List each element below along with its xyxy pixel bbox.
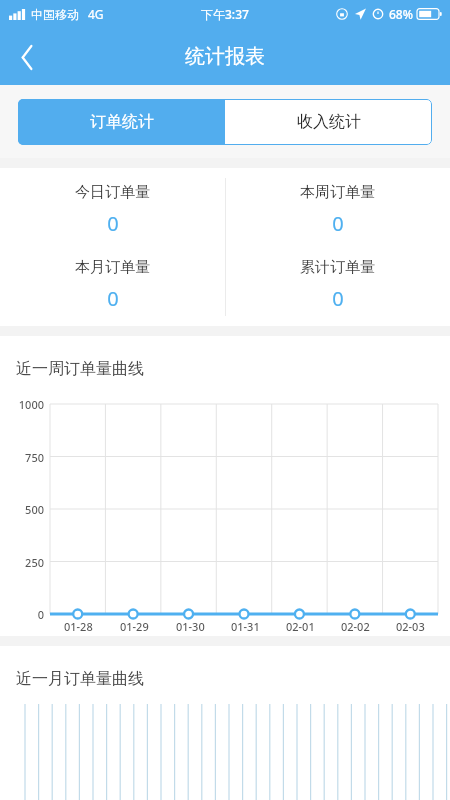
button[interactable]: 收入统计 [225, 99, 432, 145]
staticText: 02-02 [341, 619, 370, 634]
staticText: 今日订单量 [75, 183, 150, 202]
staticText: 统计报表 [185, 44, 265, 69]
staticText: 0 [107, 285, 119, 312]
button[interactable]: 累计订单量 [225, 258, 450, 312]
staticText: 01-29 [120, 619, 149, 634]
staticText: 中国移动 [31, 7, 79, 22]
button[interactable]: 本周订单量 [225, 183, 450, 237]
staticText: 01-31 [231, 619, 260, 634]
staticText: 250 [25, 555, 44, 570]
staticText: 0 [332, 210, 344, 237]
staticText: 750 [25, 450, 44, 465]
button[interactable]: 本月订单量 [0, 258, 225, 312]
staticText: 近一月订单量曲线 [16, 669, 144, 689]
staticText: 02-03 [396, 619, 425, 634]
staticText: 02-01 [286, 619, 315, 634]
staticText: 4G [88, 6, 104, 22]
staticText: 500 [25, 502, 44, 517]
staticText: 0 [37, 607, 44, 622]
button[interactable]: 订单统计 [18, 99, 225, 145]
staticText: 1000 [18, 397, 44, 412]
staticText: 订单统计 [90, 112, 154, 132]
staticText: 下午3:37 [201, 6, 249, 22]
staticText: 近一周订单量曲线 [16, 359, 144, 379]
staticText: 0 [107, 210, 119, 237]
button[interactable]: 今日订单量 [0, 183, 225, 237]
staticText: 本月订单量 [75, 258, 150, 277]
staticText: 累计订单量 [300, 258, 375, 277]
staticText: 68% [389, 6, 413, 22]
staticText: 01-30 [176, 619, 205, 634]
staticText: 0 [332, 285, 344, 312]
staticText: 收入统计 [297, 112, 361, 132]
staticText: 本周订单量 [300, 183, 375, 202]
button[interactable]: Back [0, 30, 54, 84]
staticText: 01-28 [64, 619, 93, 634]
